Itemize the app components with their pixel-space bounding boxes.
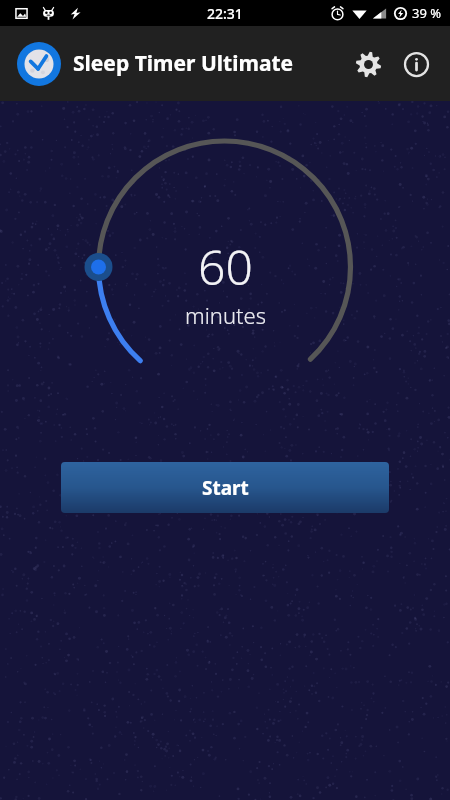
staticText: minutes (185, 300, 266, 330)
button[interactable]: About (392, 40, 440, 88)
staticText: 39 % (412, 4, 442, 22)
button[interactable]: Settings (344, 40, 392, 88)
button[interactable]: Timer duration dial, 60 minutes (0, 134, 450, 424)
staticText: 22:31 (207, 4, 243, 23)
staticText: Start (202, 475, 249, 501)
staticText: 60 (198, 234, 253, 299)
button[interactable]: Start (61, 462, 389, 513)
staticText: Sleep Timer Ultimate (73, 49, 294, 78)
